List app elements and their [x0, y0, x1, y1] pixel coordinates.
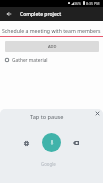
staticText: Schedule a meeting with team members: [2, 27, 103, 34]
staticText: Tap to pause: [30, 113, 64, 121]
button[interactable]: Keyboard: [70, 137, 82, 149]
button[interactable]: ADD: [5, 41, 99, 52]
button[interactable]: Settings: [20, 137, 32, 149]
staticText: Gather material: [12, 57, 48, 64]
staticText: Complete project: [20, 11, 62, 18]
button[interactable]: Gather material: [0, 56, 103, 64]
staticText: Google: [41, 161, 56, 167]
button[interactable]: Back: [2, 8, 15, 21]
button[interactable]: Microphone: [42, 133, 61, 152]
button[interactable]: Close: [93, 109, 101, 117]
staticText: ADD: [48, 44, 57, 49]
staticText: 8:35 PM: [86, 1, 100, 6]
staticText: 36%: [74, 1, 82, 6]
